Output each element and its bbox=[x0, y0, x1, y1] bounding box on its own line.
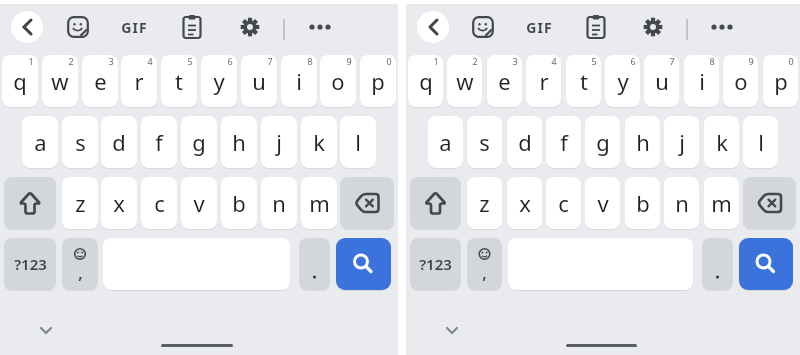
button[interactable] bbox=[60, 9, 96, 45]
button[interactable]: GIF bbox=[515, 9, 563, 45]
staticText: m bbox=[309, 188, 330, 218]
button[interactable]: o bbox=[723, 55, 758, 107]
button[interactable]: c bbox=[546, 177, 581, 229]
button[interactable]: l bbox=[743, 116, 778, 168]
button[interactable]: k bbox=[301, 116, 337, 168]
button[interactable]: f bbox=[546, 116, 581, 168]
button[interactable]: g bbox=[585, 116, 620, 168]
button[interactable] bbox=[174, 9, 210, 45]
button[interactable]: , bbox=[467, 238, 502, 290]
button[interactable]: v bbox=[585, 177, 620, 229]
button[interactable] bbox=[336, 238, 391, 290]
button[interactable]: f bbox=[141, 116, 177, 168]
button[interactable]: r bbox=[121, 55, 157, 107]
button[interactable]: l bbox=[340, 116, 376, 168]
button[interactable]: s bbox=[62, 116, 98, 168]
button[interactable] bbox=[299, 238, 330, 290]
button[interactable]: e bbox=[82, 55, 118, 107]
button[interactable]: , bbox=[62, 238, 98, 290]
button[interactable]: n bbox=[261, 177, 297, 229]
button[interactable]: g bbox=[181, 116, 217, 168]
button[interactable]: p bbox=[360, 55, 396, 107]
button[interactable]: j bbox=[261, 116, 297, 168]
staticText: 9 bbox=[346, 55, 352, 67]
button[interactable] bbox=[743, 177, 796, 229]
staticText: 6 bbox=[630, 55, 636, 67]
button[interactable]: j bbox=[664, 116, 699, 168]
button[interactable]: a bbox=[22, 116, 58, 168]
button[interactable]: GIF bbox=[110, 9, 158, 45]
button[interactable]: y bbox=[605, 55, 640, 107]
button[interactable]: u bbox=[644, 55, 679, 107]
staticText: x bbox=[519, 188, 531, 218]
button[interactable]: d bbox=[507, 116, 542, 168]
button[interactable]: z bbox=[467, 177, 502, 229]
button[interactable] bbox=[417, 11, 449, 43]
staticText: ?123 bbox=[419, 254, 452, 274]
button[interactable]: c bbox=[141, 177, 177, 229]
button[interactable] bbox=[34, 318, 58, 342]
staticText: b bbox=[232, 188, 246, 218]
button[interactable]: s bbox=[467, 116, 502, 168]
button[interactable]: h bbox=[221, 116, 257, 168]
button[interactable]: o bbox=[320, 55, 356, 107]
button[interactable] bbox=[340, 177, 394, 229]
staticText: q bbox=[419, 66, 433, 96]
button[interactable]: ?123 bbox=[410, 238, 461, 290]
staticText: ?123 bbox=[14, 254, 47, 274]
button[interactable]: d bbox=[101, 116, 137, 168]
button[interactable]: w bbox=[42, 55, 78, 107]
button[interactable]: u bbox=[241, 55, 277, 107]
button[interactable] bbox=[440, 318, 464, 342]
button[interactable]: y bbox=[201, 55, 237, 107]
button[interactable] bbox=[465, 9, 501, 45]
button[interactable]: b bbox=[221, 177, 257, 229]
staticText: l bbox=[355, 127, 361, 157]
button[interactable]: k bbox=[704, 116, 739, 168]
button[interactable] bbox=[11, 11, 43, 43]
button[interactable]: t bbox=[161, 55, 197, 107]
button[interactable]: w bbox=[447, 55, 482, 107]
button[interactable]: p bbox=[763, 55, 798, 107]
staticText: n bbox=[675, 188, 689, 218]
button[interactable]: b bbox=[625, 177, 660, 229]
button[interactable] bbox=[704, 9, 740, 45]
button[interactable]: i bbox=[684, 55, 719, 107]
button[interactable]: m bbox=[301, 177, 337, 229]
button[interactable] bbox=[578, 9, 614, 45]
button[interactable]: v bbox=[181, 177, 217, 229]
button[interactable]: h bbox=[625, 116, 660, 168]
button[interactable] bbox=[702, 238, 733, 290]
button[interactable] bbox=[232, 9, 268, 45]
button[interactable] bbox=[410, 177, 461, 229]
button[interactable]: z bbox=[62, 177, 98, 229]
staticText: 3 bbox=[108, 55, 114, 67]
button[interactable]: r bbox=[526, 55, 561, 107]
button[interactable]: e bbox=[487, 55, 522, 107]
staticText: i bbox=[699, 66, 705, 96]
staticText: g bbox=[596, 127, 610, 157]
staticText: z bbox=[75, 188, 86, 218]
button[interactable]: i bbox=[281, 55, 317, 107]
button[interactable]: x bbox=[101, 177, 137, 229]
staticText: t bbox=[580, 66, 588, 96]
button[interactable]: q bbox=[2, 55, 38, 107]
button[interactable]: n bbox=[664, 177, 699, 229]
button[interactable]: t bbox=[566, 55, 601, 107]
staticText: y bbox=[617, 66, 629, 96]
button[interactable]: q bbox=[408, 55, 443, 107]
staticText: c bbox=[154, 188, 165, 218]
button[interactable]: a bbox=[428, 116, 463, 168]
button[interactable]: m bbox=[704, 177, 739, 229]
button[interactable] bbox=[302, 9, 338, 45]
staticText: r bbox=[539, 66, 549, 96]
button[interactable] bbox=[635, 9, 671, 45]
staticText: v bbox=[597, 188, 609, 218]
staticText: a bbox=[439, 127, 452, 157]
button[interactable] bbox=[4, 177, 56, 229]
button[interactable]: x bbox=[507, 177, 542, 229]
button[interactable]: ?123 bbox=[4, 238, 56, 290]
button[interactable] bbox=[739, 238, 793, 290]
